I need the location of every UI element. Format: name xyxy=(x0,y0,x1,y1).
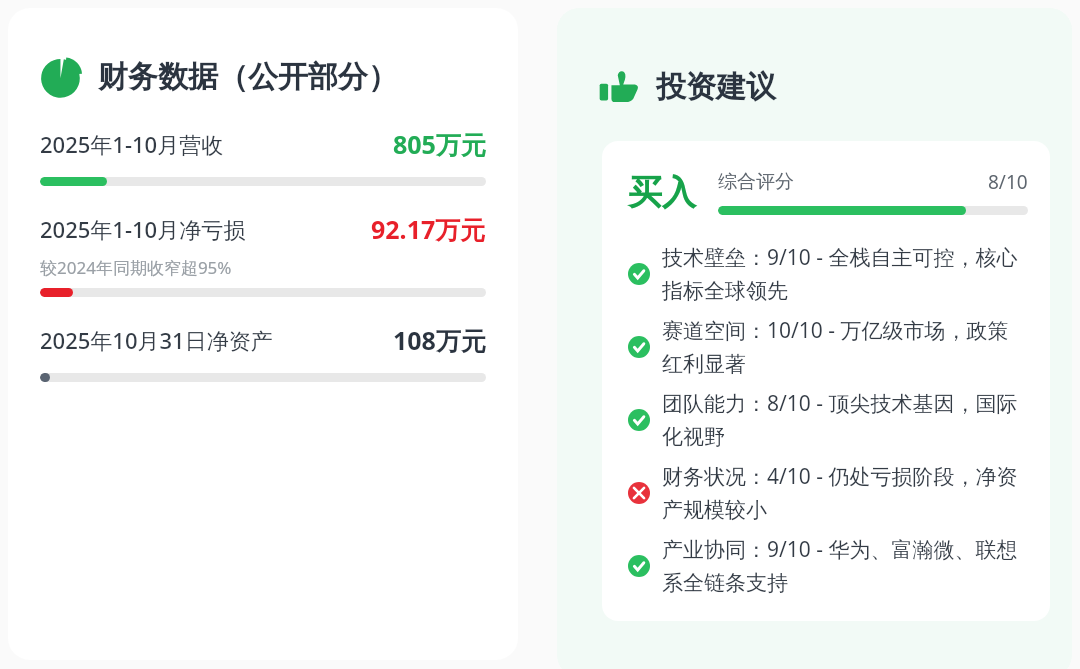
staticText: 805万元 xyxy=(393,127,486,161)
button[interactable]: 财务数据（公开部分） xyxy=(8,8,518,660)
staticText: 108万元 xyxy=(393,323,486,357)
staticText: 技术壁垒：9/10 - 全栈自主可控，核心指标全球领先 xyxy=(662,243,1028,304)
staticText: 综合评分 xyxy=(718,170,794,194)
staticText: 较2024年同期收窄超95% xyxy=(40,256,232,279)
staticText: 2025年10月31日净资产 xyxy=(40,325,273,355)
staticText: 投资建议 xyxy=(656,68,776,106)
staticText: 团队能力：8/10 - 顶尖技术基因，国际化视野 xyxy=(662,389,1028,450)
staticText: 8/10 xyxy=(988,169,1028,195)
staticText: 2025年1-10月净亏损 xyxy=(40,214,246,244)
staticText: 2025年1-10月营收 xyxy=(40,129,224,159)
staticText: 财务状况：4/10 - 仍处亏损阶段，净资产规模较小 xyxy=(662,462,1028,523)
staticText: 买入 xyxy=(628,171,696,214)
button[interactable]: 投资建议 xyxy=(557,8,1072,669)
staticText: 财务数据（公开部分） xyxy=(98,58,398,96)
staticText: 产业协同：9/10 - 华为、富瀚微、联想系全链条支持 xyxy=(662,535,1028,596)
staticText: 赛道空间：10/10 - 万亿级市场，政策红利显著 xyxy=(662,316,1028,377)
staticText: 92.17万元 xyxy=(371,212,486,246)
